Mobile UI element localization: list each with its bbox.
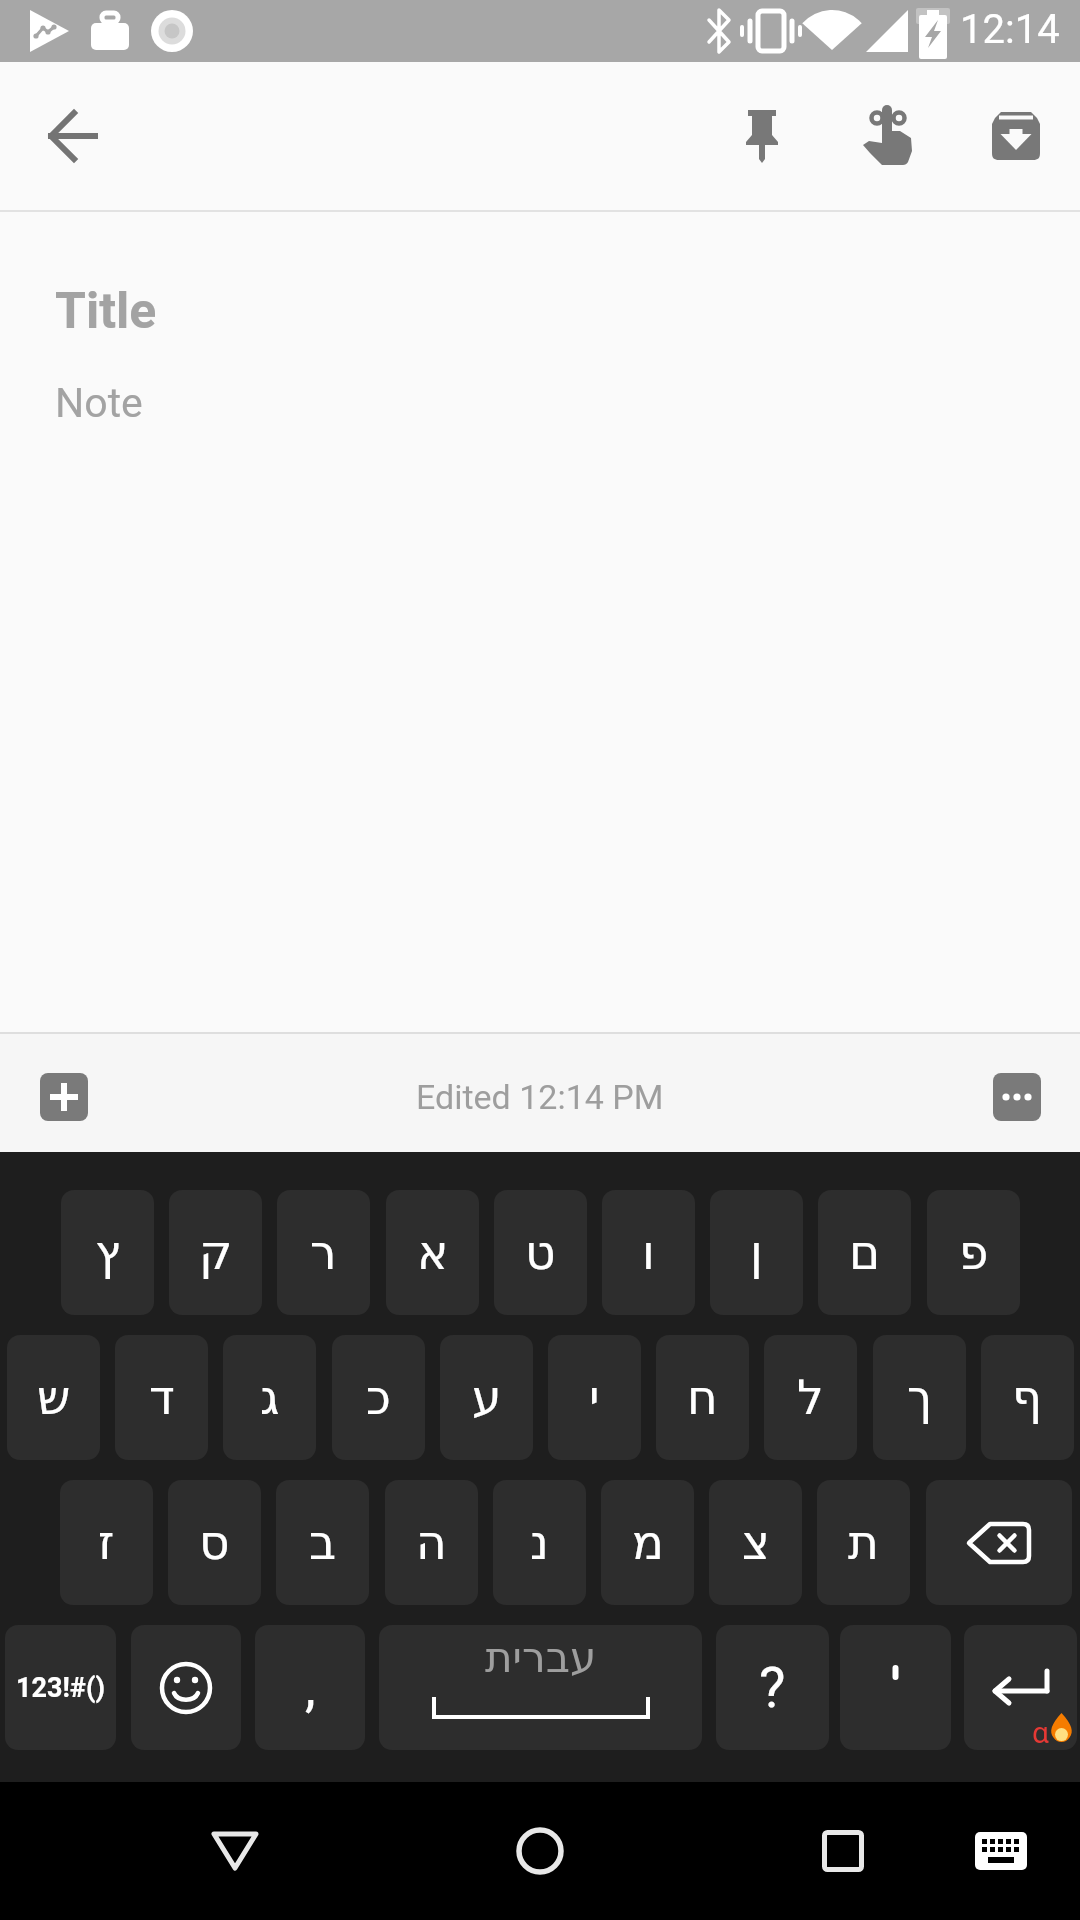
staticText: ך [907,1370,933,1425]
button[interactable] [926,1480,1072,1605]
button[interactable] [966,62,1066,210]
button[interactable]: ף [981,1335,1074,1460]
button[interactable]: ג [223,1335,316,1460]
button[interactable]: כ [332,1335,425,1460]
staticText: Edited 12:14 PM [416,1077,664,1117]
staticText: מ [632,1515,664,1570]
staticText: י [589,1370,600,1425]
staticText: א [417,1225,449,1280]
button[interactable]: צ [709,1480,802,1605]
staticText: כ [366,1370,391,1425]
staticText: Title [55,282,157,341]
button[interactable]: ם [818,1190,911,1315]
button[interactable] [993,1073,1041,1121]
button[interactable]: , [255,1625,365,1750]
staticText: , [305,1656,316,1719]
button[interactable]: ד [115,1335,208,1460]
staticText: ? [759,1655,786,1721]
button[interactable]: α [964,1625,1077,1750]
staticText: ז [98,1515,115,1570]
button[interactable]: פ [927,1190,1020,1315]
staticText: ן [750,1225,763,1280]
staticText: ת [848,1515,879,1570]
button[interactable] [40,1073,88,1121]
button[interactable]: ‎123!#() [5,1625,116,1750]
staticText: צ [742,1515,770,1570]
staticText: ג [260,1370,280,1425]
button[interactable]: מ [601,1480,694,1605]
staticText: 12:14 [960,6,1060,53]
button[interactable]: נ [493,1480,586,1605]
button[interactable]: ע [440,1335,533,1460]
staticText: α [1032,1715,1049,1750]
button[interactable]: ה [385,1480,478,1605]
staticText: ח [687,1370,718,1425]
staticText: ם [849,1225,881,1280]
button[interactable] [500,1811,580,1891]
staticText: נ [530,1515,549,1570]
button[interactable] [195,1811,275,1891]
button[interactable]: ן [710,1190,803,1315]
staticText: ר [310,1225,337,1280]
staticText: ט [525,1225,556,1280]
staticText: ס [199,1515,230,1570]
staticText: ש [37,1370,71,1425]
button[interactable]: ת [817,1480,910,1605]
button[interactable]: ץ [61,1190,154,1315]
staticText: ב [309,1515,337,1570]
button[interactable] [42,105,104,167]
button[interactable]: ס [168,1480,261,1605]
staticText: ל [797,1370,824,1425]
button[interactable]: ל [764,1335,857,1460]
button[interactable] [131,1625,241,1750]
button[interactable]: י [548,1335,641,1460]
button[interactable]: א [386,1190,479,1315]
button[interactable]: עברית [379,1625,702,1750]
button[interactable]: ש [7,1335,100,1460]
staticText: עברית [485,1633,597,1682]
staticText: ץ [95,1225,121,1280]
staticText: פ [959,1225,989,1280]
staticText: Note [55,379,143,427]
button[interactable] [712,62,812,210]
button[interactable]: ר [277,1190,370,1315]
staticText: ו [642,1225,655,1280]
button[interactable] [803,1811,883,1891]
button[interactable]: ב [276,1480,369,1605]
button[interactable] [961,1811,1041,1891]
button[interactable]: ז [60,1480,153,1605]
staticText: ה [416,1515,447,1570]
button[interactable]: ? [716,1625,829,1750]
button[interactable]: ו [602,1190,695,1315]
staticText: ק [199,1225,233,1280]
staticText: ף [1012,1370,1043,1425]
button[interactable]: ט [494,1190,587,1315]
staticText: ד [149,1370,175,1425]
button[interactable]: ח [656,1335,749,1460]
staticText: ע [472,1370,502,1425]
button[interactable]: ך [873,1335,966,1460]
button[interactable] [840,1625,951,1750]
button[interactable] [838,62,938,210]
button[interactable]: ק [169,1190,262,1315]
staticText: ‎123!#() [16,1672,105,1704]
